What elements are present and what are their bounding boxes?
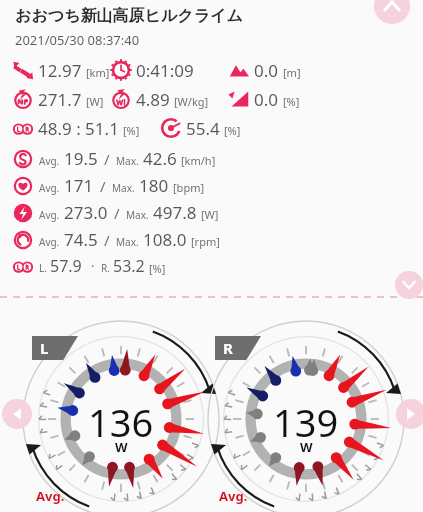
staticText: Max. bbox=[116, 235, 139, 249]
staticText: ・ bbox=[87, 259, 98, 273]
staticText: Max. bbox=[126, 208, 149, 222]
staticText: 136 bbox=[88, 396, 154, 442]
staticText: [m] bbox=[283, 65, 301, 80]
staticText: 139 bbox=[273, 396, 339, 442]
staticText: R bbox=[223, 338, 233, 358]
staticText: Max. bbox=[112, 181, 135, 195]
staticText: 12.97 bbox=[38, 59, 82, 82]
staticText: [W] bbox=[86, 94, 104, 109]
staticText: / bbox=[104, 149, 110, 169]
staticText: Max. bbox=[116, 154, 139, 168]
staticText: 108.0 bbox=[143, 228, 187, 251]
staticText: [%] bbox=[123, 123, 140, 138]
button[interactable]: Expand bbox=[395, 271, 423, 299]
staticText: L. bbox=[39, 261, 47, 275]
staticText: 42.6 bbox=[143, 147, 177, 170]
staticText: 19.5 bbox=[64, 147, 98, 170]
staticText: おおつち新山高原ヒルクライム bbox=[15, 6, 243, 26]
button[interactable]: Next bbox=[396, 399, 423, 429]
staticText: 48.9 : 51.1 bbox=[38, 117, 119, 140]
staticText: 74.5 bbox=[64, 228, 98, 251]
staticText: W bbox=[115, 438, 128, 456]
staticText: [km/h] bbox=[181, 153, 216, 168]
staticText: [bpm] bbox=[173, 180, 205, 195]
staticText: [W] bbox=[201, 207, 219, 222]
staticText: 0:41:09 bbox=[136, 59, 194, 82]
staticText: Avg. bbox=[39, 181, 60, 195]
staticText: Avg. bbox=[39, 208, 60, 222]
button[interactable]: Previous bbox=[2, 399, 32, 429]
staticText: 271.7 bbox=[38, 88, 82, 111]
staticText: W bbox=[300, 438, 313, 456]
staticText: / bbox=[104, 230, 110, 250]
staticText: Avg. bbox=[39, 235, 60, 249]
staticText: [W/kg] bbox=[174, 94, 209, 109]
staticText: Avg. bbox=[36, 487, 65, 505]
staticText: [%] bbox=[283, 94, 300, 109]
staticText: [km] bbox=[86, 65, 110, 80]
button[interactable]: Collapse bbox=[374, 0, 410, 24]
staticText: / bbox=[114, 203, 120, 223]
staticText: 0.0 bbox=[254, 88, 279, 111]
staticText: 4.89 bbox=[136, 88, 170, 111]
staticText: R. bbox=[101, 261, 110, 275]
staticText: / bbox=[100, 176, 106, 196]
staticText: 0.0 bbox=[254, 59, 279, 82]
staticText: Avg. bbox=[39, 154, 60, 168]
staticText: L bbox=[40, 338, 49, 358]
staticText: 2021/05/30 08:37:40 bbox=[15, 31, 140, 49]
staticText: 180 bbox=[139, 174, 169, 197]
staticText: 55.4 bbox=[186, 117, 220, 140]
staticText: 171 bbox=[64, 174, 94, 197]
staticText: Avg. bbox=[219, 487, 248, 505]
staticText: [rpm] bbox=[191, 234, 220, 249]
staticText: 53.2 bbox=[113, 255, 145, 277]
staticText: 57.9 bbox=[50, 255, 82, 277]
staticText: 497.8 bbox=[153, 201, 197, 224]
staticText: [%] bbox=[224, 123, 241, 138]
staticText: 273.0 bbox=[64, 201, 108, 224]
staticText: [%] bbox=[149, 261, 166, 276]
